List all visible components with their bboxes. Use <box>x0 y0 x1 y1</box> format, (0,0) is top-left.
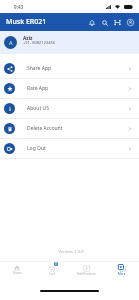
button[interactable]: 0 <box>34 262 69 280</box>
button[interactable]: Delete Account <box>0 119 139 138</box>
staticText: Log Out <box>27 145 46 152</box>
button[interactable]: Notifications <box>85 16 98 29</box>
staticText: Delete Account <box>27 125 63 132</box>
staticText: More <box>118 272 126 276</box>
button[interactable]: Connected devices <box>111 16 124 29</box>
staticText: 0 <box>55 262 57 266</box>
staticText: Version: 1.0.0 <box>58 249 84 254</box>
staticText: +91- 8082123456 <box>23 40 56 45</box>
staticText: About US <box>27 105 49 112</box>
staticText: A <box>9 39 13 46</box>
staticText: Aziz <box>23 35 33 42</box>
button[interactable]: More <box>104 262 139 280</box>
button[interactable]: Add Products <box>69 262 104 280</box>
button[interactable]: Rate App <box>0 79 139 98</box>
button[interactable]: Share App <box>0 59 139 78</box>
staticText: Rate App <box>27 85 49 92</box>
button[interactable]: Home <box>0 262 34 280</box>
staticText: Cart <box>49 272 55 276</box>
staticText: Share App <box>27 65 52 72</box>
button[interactable]: Account <box>124 16 137 29</box>
staticText: Musk ER021 <box>6 17 47 27</box>
button[interactable]: Log Out <box>0 139 139 158</box>
button[interactable]: Search <box>98 16 111 29</box>
staticText: Add Products <box>77 272 96 276</box>
staticText: Home <box>13 271 22 275</box>
staticText: 9:43 <box>14 4 24 10</box>
button[interactable]: About US <box>0 99 139 118</box>
button[interactable]: A <box>0 31 139 54</box>
